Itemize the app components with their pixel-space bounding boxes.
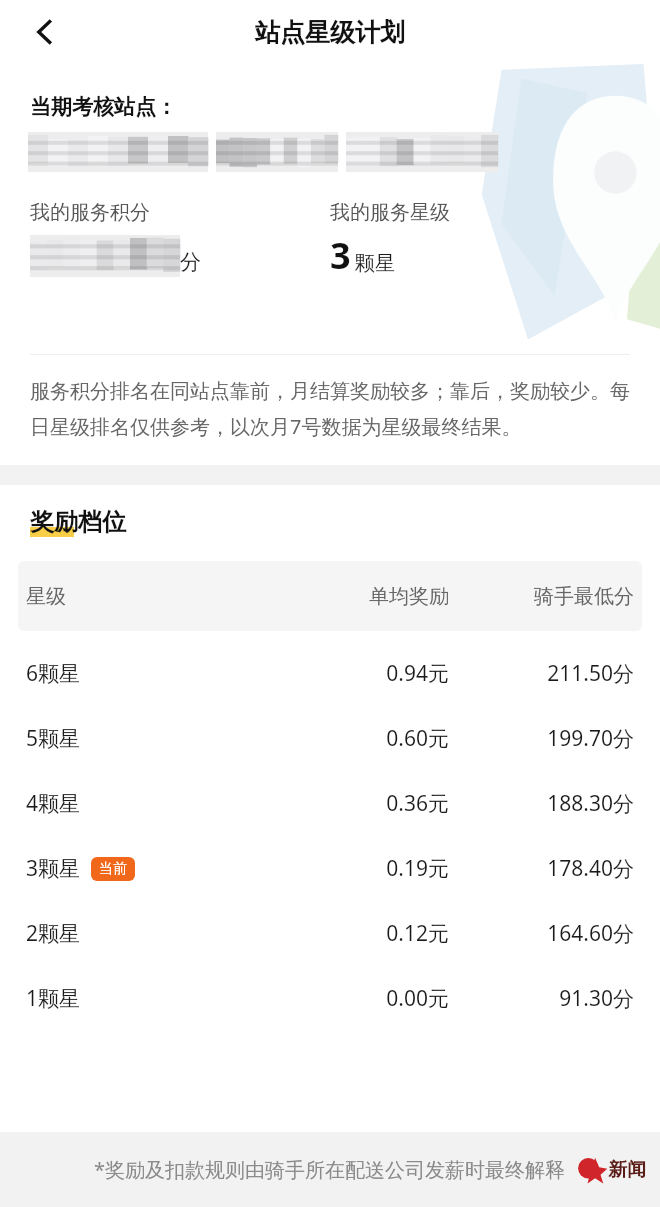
staticText: 站点星级计划: [255, 17, 405, 48]
staticText: 新闻: [608, 1158, 646, 1182]
staticText: 我的服务积分: [30, 200, 150, 225]
button[interactable]: 2颗星: [0, 901, 660, 966]
button[interactable]: 4颗星: [0, 771, 660, 836]
staticText: 4颗星: [26, 789, 81, 818]
staticText: 当前: [99, 860, 127, 878]
button[interactable]: 6颗星: [0, 641, 660, 706]
staticText: 2颗星: [26, 919, 81, 948]
staticText: 单均奖励: [369, 584, 449, 609]
staticText: 当期考核站点：: [30, 94, 177, 120]
staticText: 211.50分: [547, 659, 634, 688]
button[interactable]: Back: [16, 3, 74, 61]
staticText: 5颗星: [26, 724, 81, 753]
staticText: 3颗星: [26, 854, 81, 883]
staticText: 188.30分: [547, 789, 634, 818]
button[interactable]: 5颗星: [0, 706, 660, 771]
staticText: 奖励档位: [30, 507, 126, 537]
staticText: 骑手最低分: [534, 584, 634, 609]
staticText: 我的服务星级: [330, 200, 450, 225]
staticText: 1颗星: [26, 984, 81, 1013]
staticText: 0.36元: [386, 789, 449, 818]
staticText: 星级: [26, 584, 299, 609]
staticText: 178.40分: [547, 854, 634, 883]
staticText: 199.70分: [547, 724, 634, 753]
button[interactable]: 3颗星: [0, 836, 660, 901]
staticText: 6颗星: [26, 659, 81, 688]
staticText: 3: [330, 231, 351, 280]
staticText: 服务积分排名在同站点靠前，月结算奖励较多；靠后，奖励较少。每日星级排名仅供参考，…: [30, 379, 630, 440]
staticText: 0.19元: [386, 854, 449, 883]
staticText: 164.60分: [547, 919, 634, 948]
staticText: 分: [180, 249, 201, 275]
staticText: 91.30分: [559, 984, 634, 1013]
staticText: *奖励及扣款规则由骑手所在配送公司发薪时最终解释: [94, 1156, 566, 1183]
staticText: 0.12元: [386, 919, 449, 948]
button[interactable]: 1颗星: [0, 966, 660, 1031]
staticText: 0.94元: [386, 659, 449, 688]
staticText: 0.00元: [386, 984, 449, 1013]
staticText: 0.60元: [386, 724, 449, 753]
staticText: 颗星: [355, 251, 395, 276]
